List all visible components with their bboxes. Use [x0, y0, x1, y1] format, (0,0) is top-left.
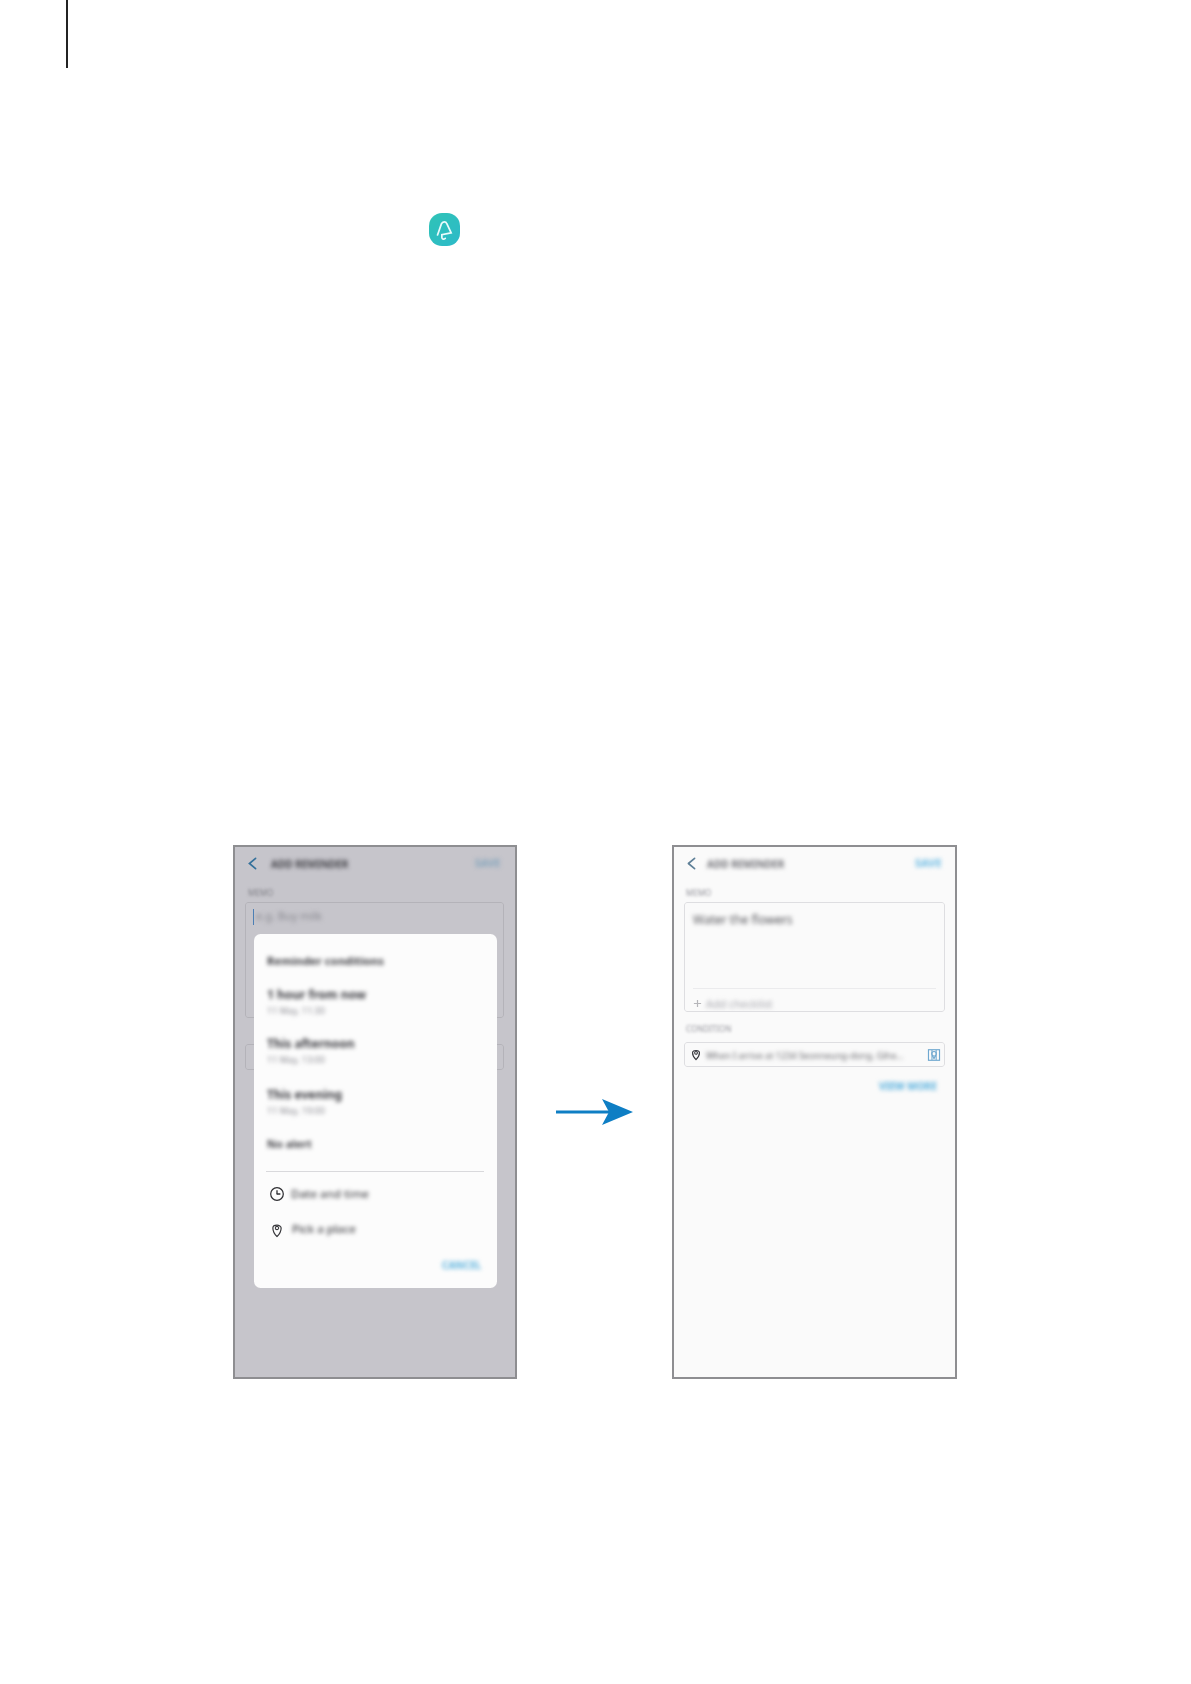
staticText: This evening	[267, 1086, 343, 1102]
button[interactable]: This afternoon	[267, 1035, 481, 1065]
staticText: Date and time	[291, 1186, 369, 1202]
staticText: ADD REMINDER	[707, 857, 785, 871]
staticText: Pick a place	[292, 1221, 356, 1237]
staticText: SAVE	[915, 855, 942, 870]
button[interactable]: CANCEL	[440, 1256, 484, 1273]
staticText: Add checklist	[706, 996, 773, 1011]
button[interactable]: VIEW MORE	[872, 1079, 937, 1093]
button[interactable]: Back	[686, 857, 697, 870]
button[interactable]: This evening	[267, 1086, 481, 1116]
button[interactable]: Add checklist	[693, 995, 936, 1011]
button[interactable]: Back	[247, 857, 258, 870]
staticText: ADD REMINDER	[271, 857, 349, 871]
staticText: When I arrive at 1234 Seonneung-dong, Gi…	[706, 1049, 904, 1061]
button[interactable]: When I arrive at 1234 Seonneung-dong, Gi…	[684, 1042, 945, 1067]
staticText: 11 May, 19:00	[267, 1104, 325, 1116]
staticText: MEMO	[248, 887, 274, 898]
button[interactable]: Date and time	[270, 1184, 484, 1204]
button[interactable]: Water the flowers	[684, 902, 945, 1012]
staticText: VIEW MORE	[879, 1079, 937, 1093]
staticText: CANCEL	[442, 1258, 482, 1272]
staticText: 1 hour from now	[267, 986, 366, 1002]
button[interactable]: Pick a place	[271, 1219, 485, 1239]
staticText: Water the flowers	[693, 911, 793, 927]
staticText: 11 May, 13:00	[267, 1053, 325, 1065]
button[interactable]	[245, 902, 504, 1018]
staticText: No alert	[267, 1136, 312, 1151]
staticText: This afternoon	[267, 1035, 355, 1051]
button[interactable]: 1 hour from now	[267, 986, 481, 1016]
staticText: SAVE	[475, 856, 501, 870]
button[interactable]	[245, 1044, 504, 1070]
button[interactable]: Reminder app	[429, 213, 460, 246]
staticText: MEMO	[686, 887, 712, 898]
staticText: Reminder conditions	[267, 953, 384, 968]
staticText: e.g. Buy milk	[256, 908, 322, 923]
staticText: CONDITION	[686, 1023, 732, 1034]
button[interactable]: Map	[928, 1049, 940, 1061]
staticText: 11 May, 11:30	[267, 1004, 325, 1016]
